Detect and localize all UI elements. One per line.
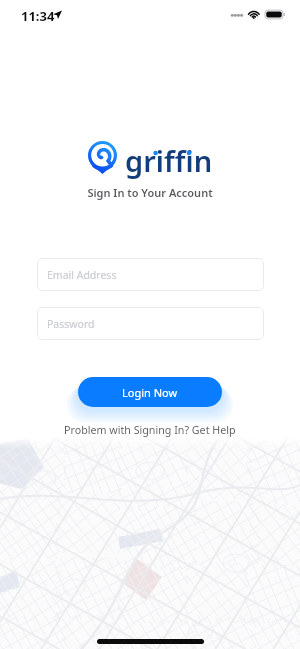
button[interactable]: Login Now xyxy=(78,377,222,407)
staticText: Password xyxy=(47,317,95,331)
staticText: 11:34 xyxy=(21,7,55,25)
other: Location xyxy=(53,10,62,19)
staticText: griffin xyxy=(125,141,213,180)
staticText: Login Now xyxy=(122,385,178,400)
staticText: Problem with Signing In? Get Help xyxy=(64,423,236,438)
staticText: Email Address xyxy=(47,268,117,282)
button[interactable]: Password xyxy=(37,307,264,340)
button[interactable]: Problem with Signing In? Get Help xyxy=(58,421,242,440)
staticText: Sign In to Your Account xyxy=(0,185,300,200)
button[interactable]: Email Address xyxy=(37,258,264,291)
